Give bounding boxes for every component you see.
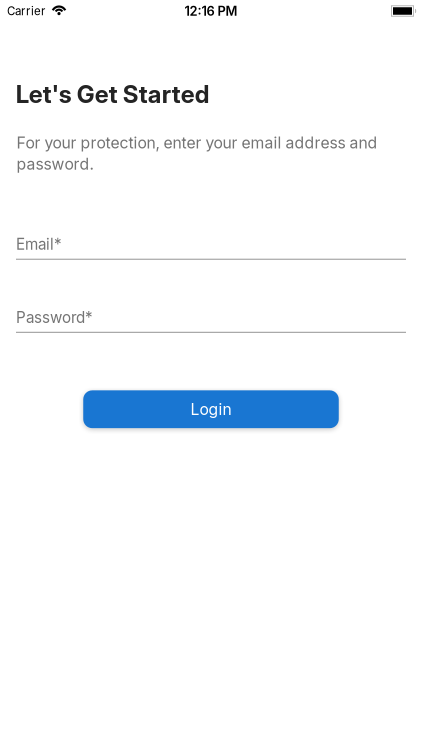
staticText: 12:16 PM [184,3,237,19]
staticText: For your protection, enter your email ad… [16,133,377,152]
staticText: Password* [16,308,93,327]
staticText: Let's Get Started [16,80,210,109]
staticText: Email* [16,235,62,253]
button[interactable]: Login [83,390,339,428]
staticText: password. [16,154,93,174]
staticText: Carrier [7,4,45,18]
button[interactable]: Password* [0,308,422,333]
staticText: Login [190,400,231,419]
button[interactable]: Email* [0,235,422,260]
